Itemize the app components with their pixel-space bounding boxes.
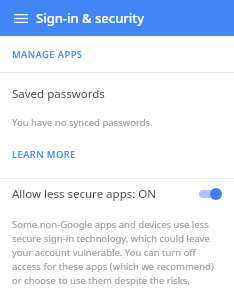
- button[interactable]: MANAGE APPS: [0, 43, 95, 66]
- staticText: Allow less secure apps: ON: [12, 186, 196, 202]
- button[interactable]: LEARN MORE: [0, 145, 88, 164]
- staticText: Some non-Google apps and devices use les…: [12, 218, 223, 287]
- button[interactable]: Allow less secure apps: ON: [0, 179, 234, 209]
- staticText: LEARN MORE: [12, 148, 76, 161]
- staticText: Saved passwords: [12, 86, 105, 102]
- staticText: MANAGE APPS: [12, 48, 83, 61]
- staticText: Sign-in & security: [36, 9, 145, 27]
- other: Allow less secure apps toggle, on: [196, 186, 222, 202]
- button[interactable]: Open navigation menu: [11, 8, 31, 28]
- staticText: You have no synced passwords.: [12, 116, 153, 129]
